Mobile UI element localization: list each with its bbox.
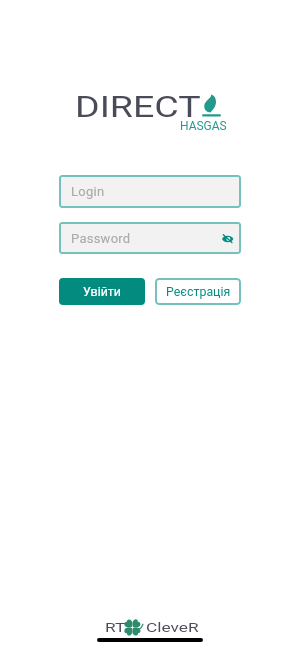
other: CleveR logo: [123, 617, 147, 641]
button[interactable]: Login: [59, 175, 241, 208]
button[interactable]: Password: [59, 222, 241, 254]
staticText: Login: [71, 184, 105, 199]
staticText: RT: [105, 619, 125, 635]
staticText: DIRECT: [75, 90, 202, 124]
staticText: Password: [71, 231, 131, 246]
staticText: Реєстрація: [166, 284, 231, 299]
button[interactable]: Увійти: [59, 278, 145, 305]
staticText: Увійти: [83, 284, 121, 299]
button[interactable]: Show password: [216, 229, 238, 251]
button[interactable]: Реєстрація: [155, 278, 241, 305]
staticText: CleveR: [146, 619, 200, 635]
staticText: HASGAS: [180, 119, 227, 133]
